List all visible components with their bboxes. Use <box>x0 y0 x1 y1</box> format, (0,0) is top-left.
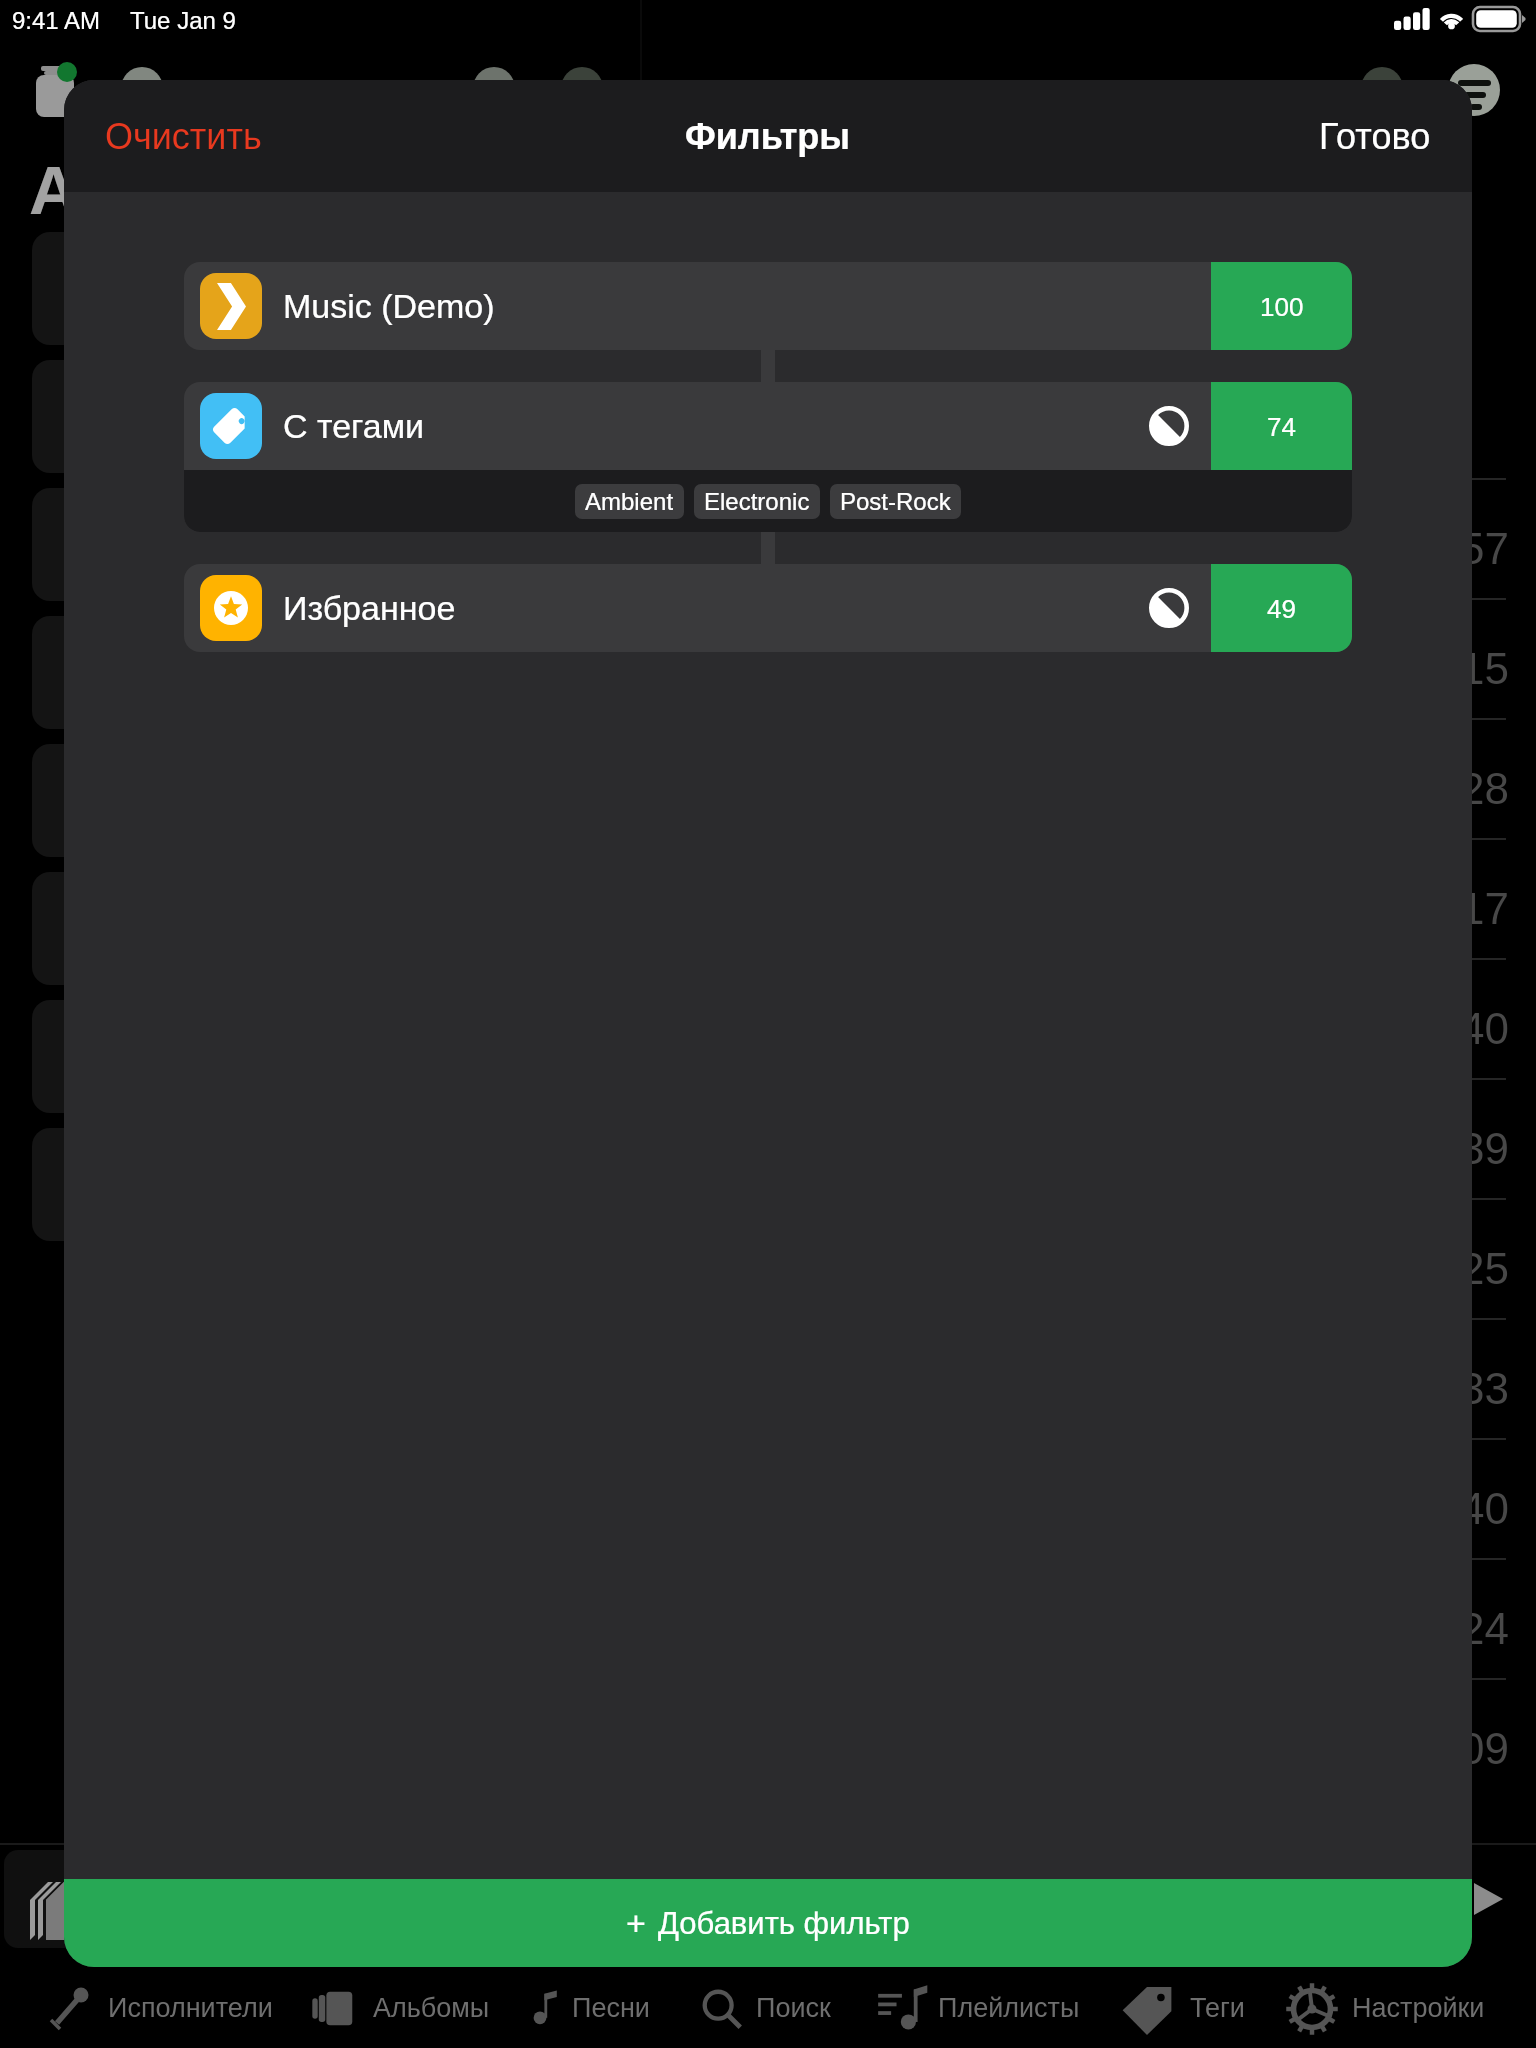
button[interactable]: Post-Rock <box>830 484 961 519</box>
staticText: Music (Demo) <box>283 287 495 325</box>
staticText: 24 <box>1460 1604 1509 1653</box>
staticText: Поиск <box>756 1993 831 2023</box>
staticText: Альбомы <box>373 1993 490 2023</box>
staticText: A <box>29 152 79 228</box>
button[interactable]: Очистить <box>64 96 303 176</box>
staticText: 39 <box>1460 1124 1509 1173</box>
staticText: 28 <box>1460 764 1509 813</box>
staticText: Добавить фильтр <box>658 1906 910 1941</box>
staticText: Ambient <box>585 488 674 515</box>
staticText: Избранное <box>283 589 456 627</box>
button[interactable]: Toggle match mode <box>1145 584 1193 632</box>
button[interactable] <box>512 1967 682 2048</box>
staticText: + <box>626 1904 646 1942</box>
staticText: 15 <box>1460 644 1509 693</box>
button[interactable]: Toggle match mode <box>1145 402 1193 450</box>
button[interactable] <box>1102 1967 1268 2048</box>
staticText: Теги <box>1190 1993 1245 2023</box>
staticText: Готово <box>1319 116 1431 156</box>
staticText: 40 <box>1460 1484 1509 1533</box>
staticText: 49 <box>1267 594 1296 623</box>
staticText: 40 <box>1460 1004 1509 1053</box>
staticText: 25 <box>1460 1244 1509 1293</box>
staticText: Песни <box>572 1993 650 2023</box>
staticText: 100 <box>1260 292 1304 321</box>
staticText: Исполнители <box>108 1993 273 2023</box>
button[interactable] <box>860 1967 1102 2048</box>
button[interactable]: Electronic <box>694 484 820 519</box>
staticText: 57 <box>1460 524 1509 573</box>
staticText: 74 <box>1267 412 1296 441</box>
button[interactable] <box>292 1967 512 2048</box>
staticText: Tue Jan 9 <box>130 7 236 34</box>
staticText: Electronic <box>704 488 810 515</box>
staticText: Очистить <box>105 116 262 156</box>
button[interactable]: + <box>64 1879 1472 1967</box>
button[interactable] <box>682 1967 860 2048</box>
staticText: 17 <box>1460 884 1509 933</box>
staticText: 33 <box>1460 1364 1509 1413</box>
button[interactable]: Готово <box>1278 96 1472 176</box>
staticText: 9:41 AM <box>12 7 101 34</box>
staticText: Post-Rock <box>840 488 951 515</box>
staticText: С тегами <box>283 407 425 445</box>
button[interactable]: С тегами <box>184 382 1352 532</box>
staticText: Фильтры <box>685 116 851 156</box>
button[interactable]: Ambient <box>575 484 684 519</box>
staticText: Плейлисты <box>938 1993 1080 2023</box>
button[interactable] <box>30 1967 292 2048</box>
staticText: Настройки <box>1352 1993 1485 2023</box>
staticText: 09 <box>1460 1724 1509 1773</box>
button[interactable]: Избранное <box>184 564 1352 652</box>
button[interactable] <box>1268 1967 1520 2048</box>
button[interactable]: Music (Demo) <box>184 262 1352 350</box>
